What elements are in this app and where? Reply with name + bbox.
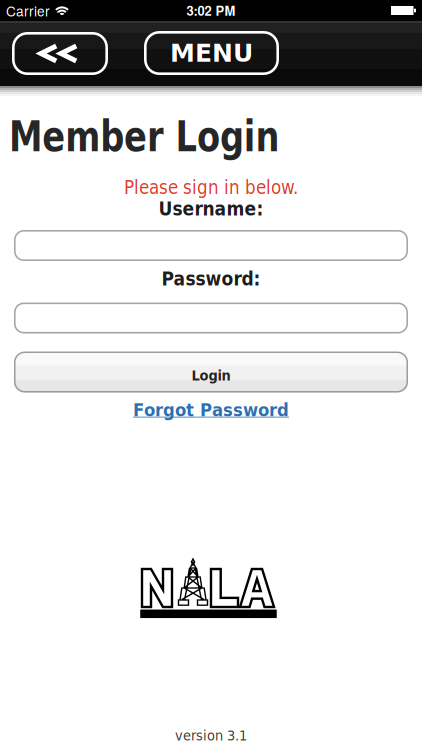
button[interactable]: Forgot Password <box>133 399 289 421</box>
staticText: version 3.1 <box>175 727 247 744</box>
staticText: Member Login <box>9 112 350 161</box>
button[interactable]: Password <box>14 302 408 333</box>
button[interactable]: MENU <box>144 31 279 75</box>
staticText: Carrier <box>6 1 50 20</box>
staticText: Username: <box>158 198 263 220</box>
staticText: Forgot Password <box>133 399 289 421</box>
button[interactable]: Back <box>12 32 108 75</box>
staticText: Password: <box>161 268 260 290</box>
staticText: MENU <box>170 38 253 67</box>
staticText: Please sign in below. <box>124 177 298 198</box>
button[interactable]: Username <box>14 230 408 261</box>
staticText: Login <box>191 367 230 384</box>
button[interactable]: Login <box>14 351 408 392</box>
staticText: 3:02 PM <box>186 1 235 20</box>
